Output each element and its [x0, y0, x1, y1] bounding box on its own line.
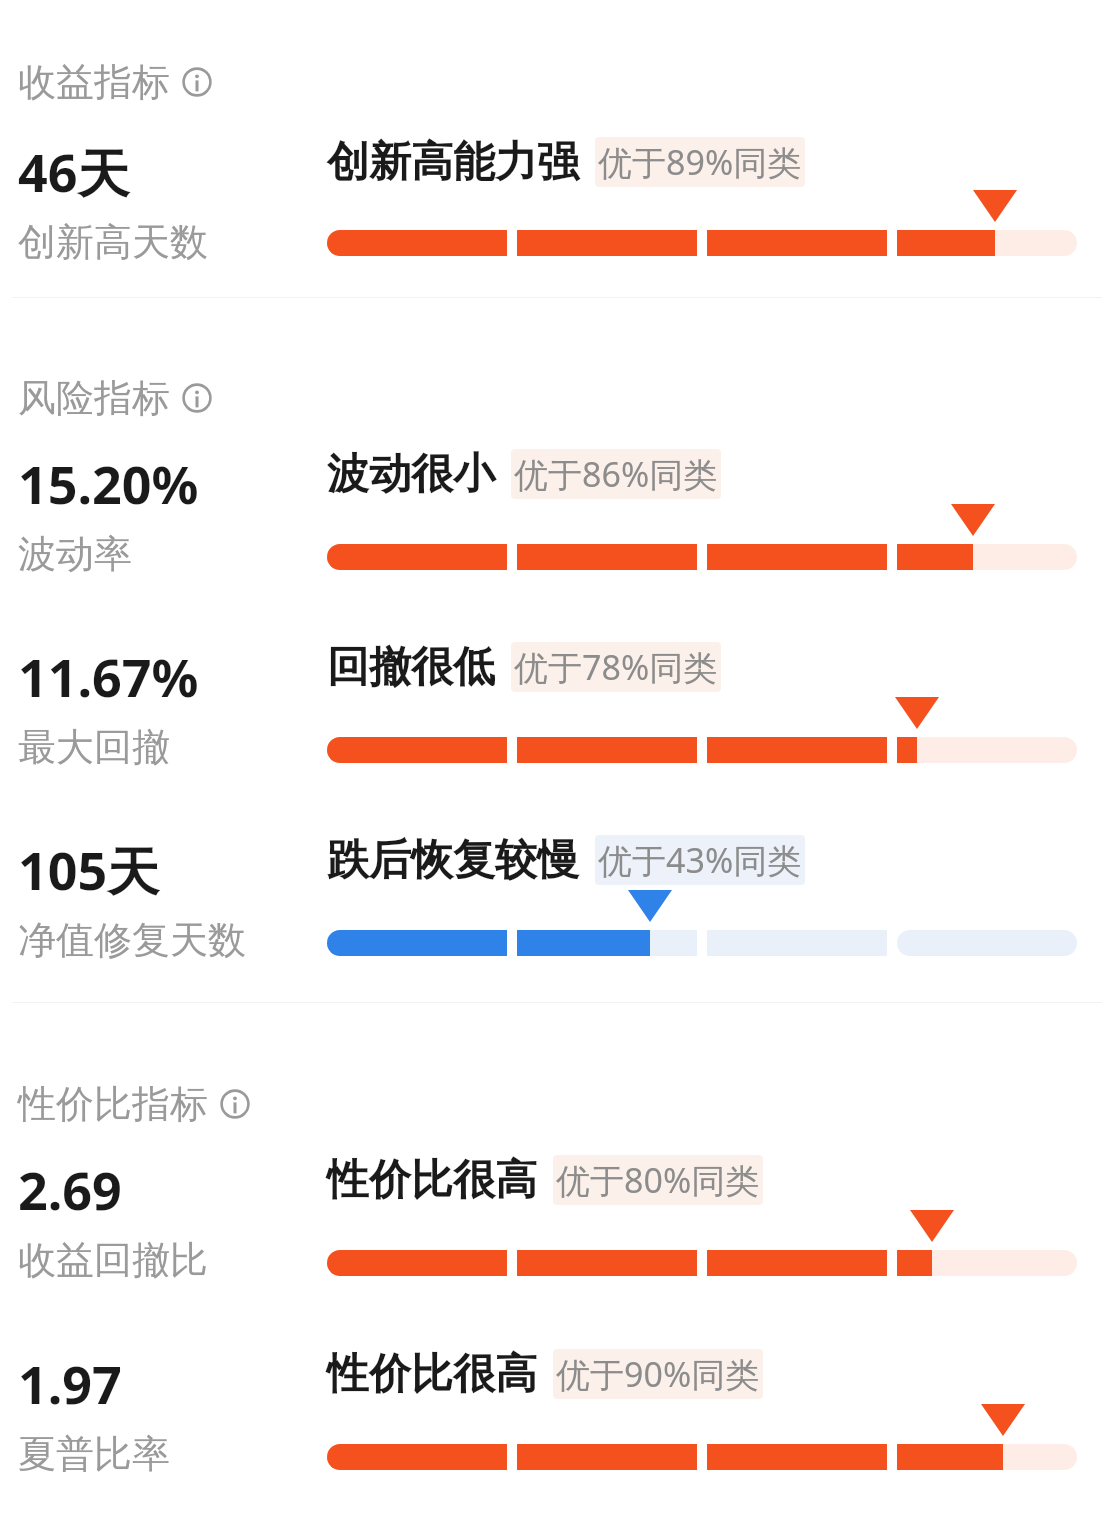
- staticText: 105天: [18, 834, 160, 905]
- button[interactable]: 2.69: [0, 1138, 1102, 1318]
- staticText: 回撤很低: [327, 641, 495, 694]
- staticText: 11.67%: [18, 641, 199, 712]
- staticText: 最大回撤: [18, 723, 170, 771]
- button[interactable]: 1.97: [0, 1332, 1102, 1512]
- button[interactable]: 性价比指标: [18, 1080, 1102, 1128]
- staticText: 净值修复天数: [18, 916, 246, 964]
- staticText: 风险指标: [18, 374, 170, 422]
- staticText: 性价比指标: [18, 1080, 208, 1128]
- button[interactable]: 11.67%: [0, 625, 1102, 805]
- staticText: 2.69: [18, 1154, 122, 1225]
- staticText: 优于90%同类: [556, 1351, 760, 1397]
- button[interactable]: 收益指标: [18, 58, 1102, 106]
- staticText: 创新高能力强: [327, 136, 579, 189]
- button[interactable]: 风险指标: [18, 374, 1102, 422]
- staticText: 跌后恢复较慢: [327, 834, 579, 887]
- staticText: 波动很小: [327, 448, 495, 501]
- staticText: 优于80%同类: [556, 1157, 760, 1203]
- other: 说明: [220, 1089, 250, 1119]
- staticText: 优于86%同类: [514, 451, 718, 497]
- staticText: 优于89%同类: [598, 139, 802, 185]
- button[interactable]: 15.20%: [0, 432, 1102, 612]
- button[interactable]: 105天: [0, 818, 1102, 998]
- staticText: 创新高天数: [18, 218, 208, 266]
- staticText: 46天: [18, 136, 130, 207]
- staticText: 15.20%: [18, 448, 199, 519]
- staticText: 优于78%同类: [514, 644, 718, 690]
- staticText: 夏普比率: [18, 1430, 170, 1478]
- other: 说明: [182, 67, 212, 97]
- staticText: 收益回撤比: [18, 1236, 208, 1284]
- staticText: 性价比很高: [327, 1348, 537, 1401]
- other: 说明: [182, 383, 212, 413]
- button[interactable]: 46天: [0, 118, 1102, 288]
- staticText: 波动率: [18, 530, 132, 578]
- staticText: 优于43%同类: [598, 837, 802, 883]
- staticText: 收益指标: [18, 58, 170, 106]
- staticText: 1.97: [18, 1348, 122, 1419]
- staticText: 性价比很高: [327, 1154, 537, 1207]
